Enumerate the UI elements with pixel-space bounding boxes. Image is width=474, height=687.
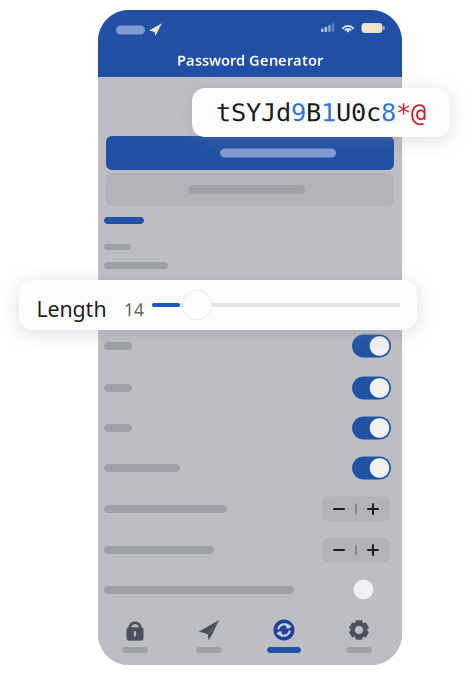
staticText: Password Generator [177,50,323,70]
staticText: B [306,98,321,127]
button[interactable]: Vault [116,618,154,658]
button[interactable] [352,376,391,399]
button[interactable] [322,537,390,562]
button[interactable] [322,496,390,521]
staticText: U0c [336,98,381,127]
staticText: 1 [321,98,336,127]
staticText: 9 [291,98,306,127]
button[interactable] [352,334,391,357]
staticText: Length [36,294,106,323]
button[interactable] [106,136,394,170]
button[interactable] [352,456,391,479]
staticText: *@ [396,98,426,127]
button[interactable]: Send [190,618,228,658]
staticText: 8 [381,98,396,127]
button[interactable]: Settings [340,618,378,658]
staticText: 14 [124,298,144,321]
button[interactable] [352,416,391,439]
button[interactable] [352,578,391,601]
staticText: tSYJd [216,98,291,127]
button[interactable] [106,173,394,206]
button[interactable]: Generator [265,618,303,658]
